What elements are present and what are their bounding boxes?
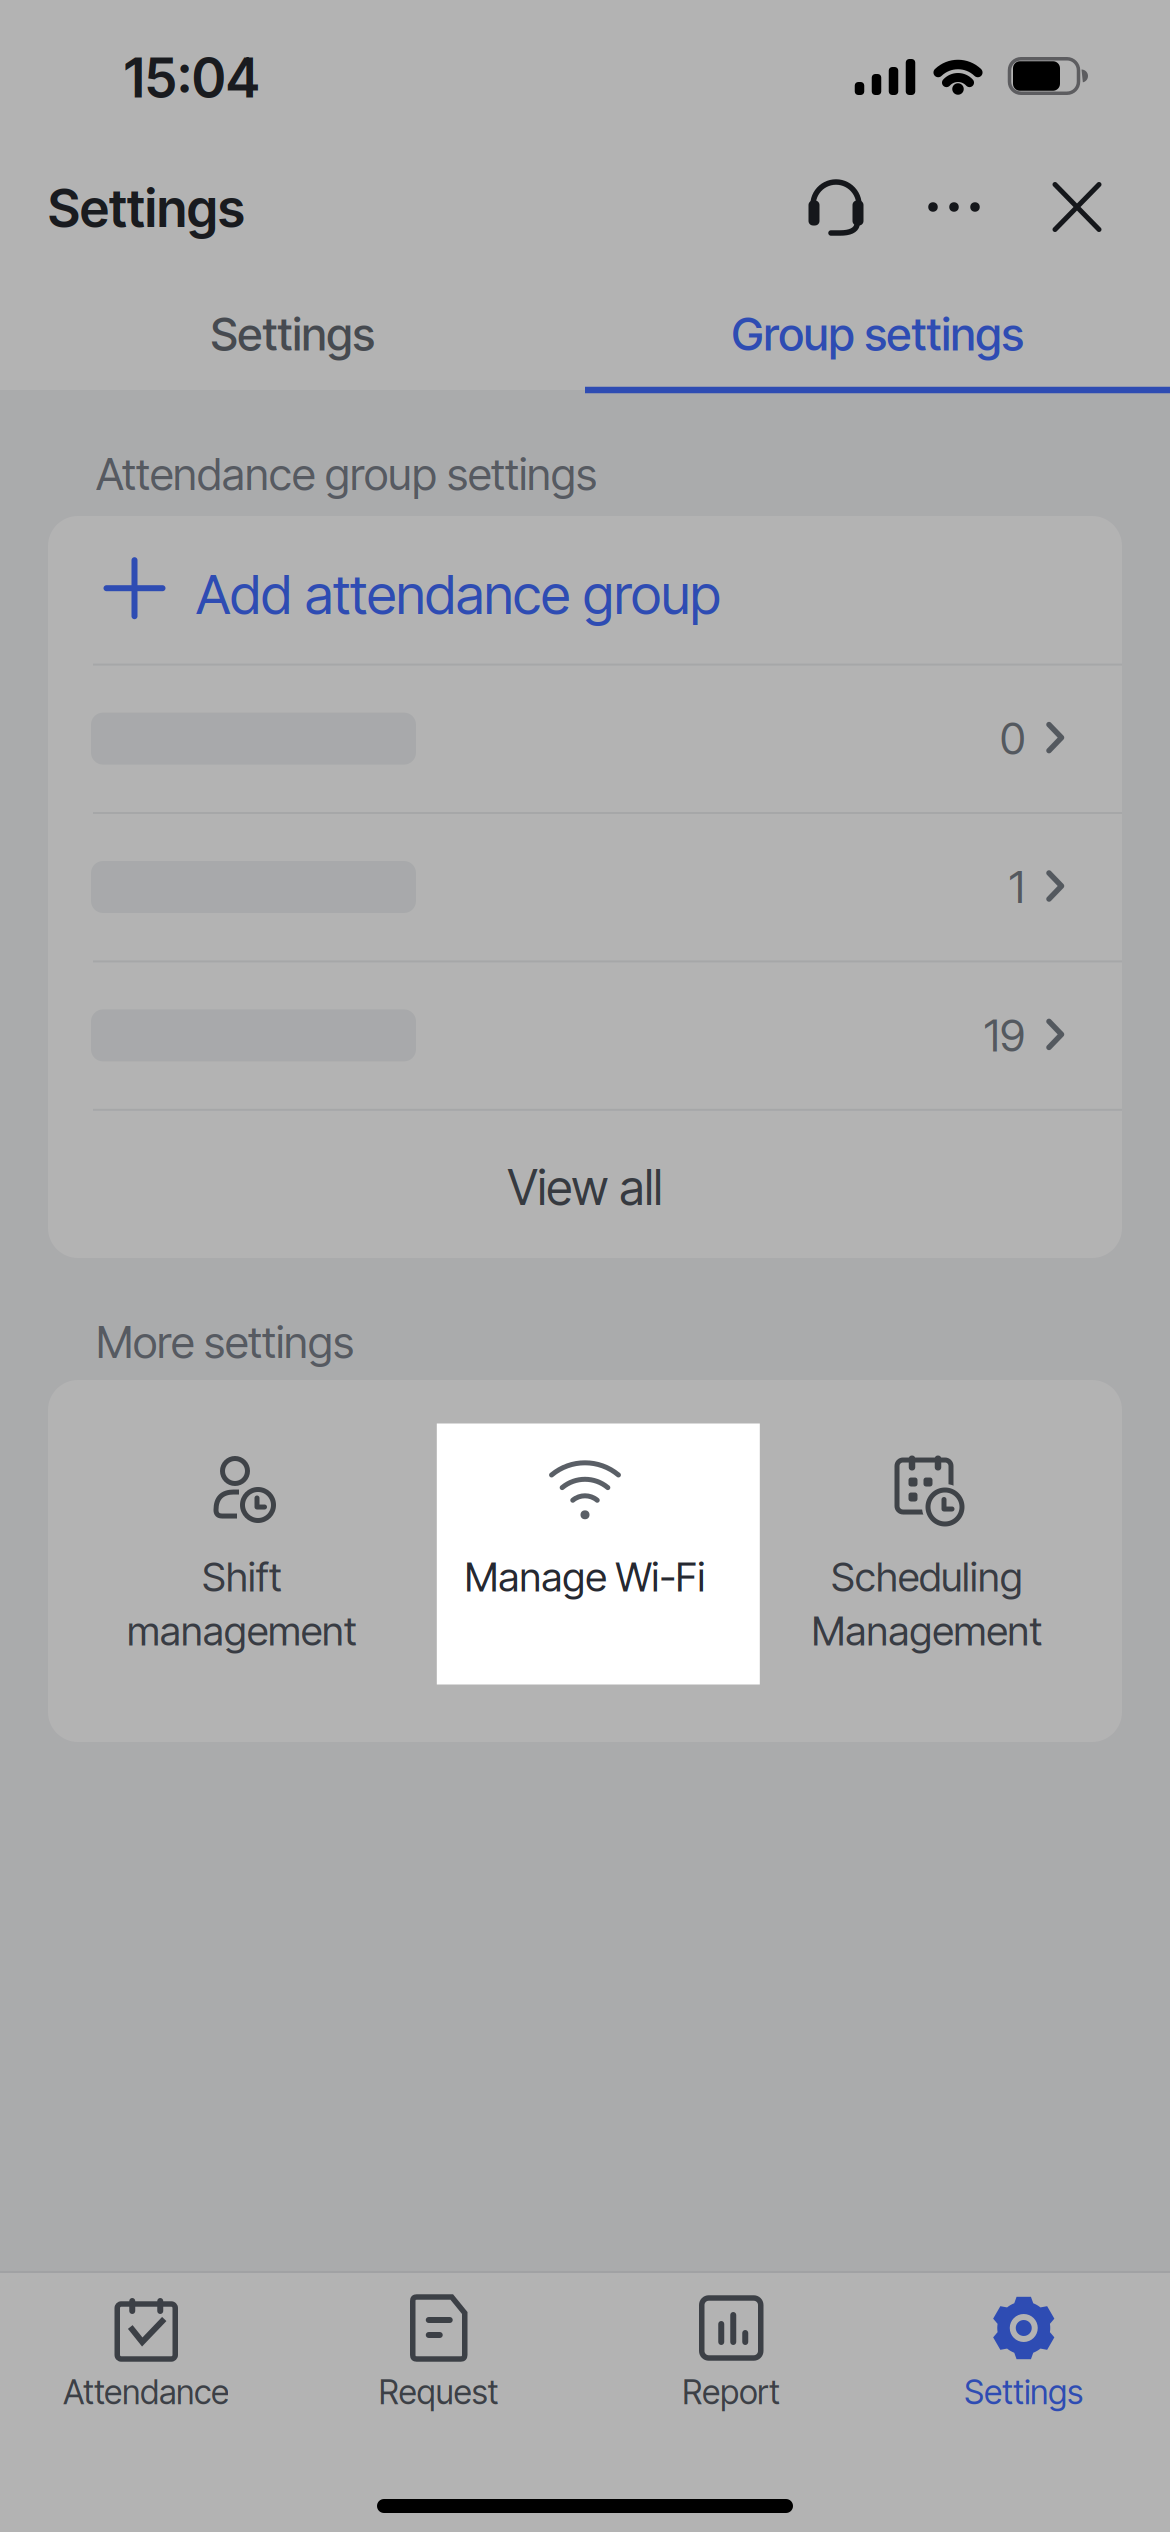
- staticText: Request: [379, 2372, 499, 2412]
- button[interactable]: Group settings: [585, 279, 1170, 389]
- staticText: Settings: [964, 2372, 1083, 2412]
- staticText: 0: [1000, 713, 1025, 764]
- button[interactable]: Add attendance group: [48, 516, 1122, 664]
- button[interactable]: Manage Wi-Fi: [437, 1423, 760, 1684]
- staticText: Scheduling: [831, 1553, 1023, 1601]
- staticText: 1: [1009, 861, 1025, 913]
- button[interactable]: Attendance group, 19: [48, 961, 1122, 1109]
- staticText: Attendance: [63, 2372, 229, 2412]
- button[interactable]: Shift: [80, 1423, 403, 1684]
- staticText: Add attendance group: [196, 562, 721, 626]
- button[interactable]: Scheduling: [765, 1423, 1088, 1684]
- staticText: Attendance group settings: [96, 448, 597, 500]
- button[interactable]: Report: [585, 2272, 877, 2532]
- staticText: Group settings: [731, 307, 1023, 361]
- button[interactable]: Support: [790, 161, 882, 253]
- button[interactable]: Attendance: [0, 2272, 292, 2532]
- staticText: Manage Wi-Fi: [464, 1553, 705, 1601]
- button[interactable]: Settings: [878, 2272, 1170, 2532]
- staticText: Management: [811, 1607, 1042, 1655]
- button[interactable]: Attendance group, 1: [48, 813, 1122, 961]
- staticText: 15:04: [124, 46, 260, 109]
- button[interactable]: More: [908, 161, 1000, 253]
- button[interactable]: Attendance group, 0: [48, 665, 1122, 813]
- staticText: More settings: [96, 1316, 354, 1368]
- button[interactable]: Settings: [0, 279, 585, 389]
- staticText: Manage Wi-Fi: [464, 1553, 705, 1601]
- staticText: Settings: [210, 307, 374, 361]
- staticText: View all: [507, 1159, 662, 1216]
- button[interactable]: View all: [48, 1114, 1122, 1260]
- staticText: management: [127, 1607, 357, 1655]
- staticText: Report: [682, 2372, 780, 2412]
- staticText: 19: [984, 1009, 1025, 1061]
- button[interactable]: Request: [293, 2272, 585, 2532]
- button[interactable]: Close: [1031, 161, 1123, 253]
- staticText: Shift: [202, 1553, 282, 1601]
- staticText: Settings: [48, 177, 245, 239]
